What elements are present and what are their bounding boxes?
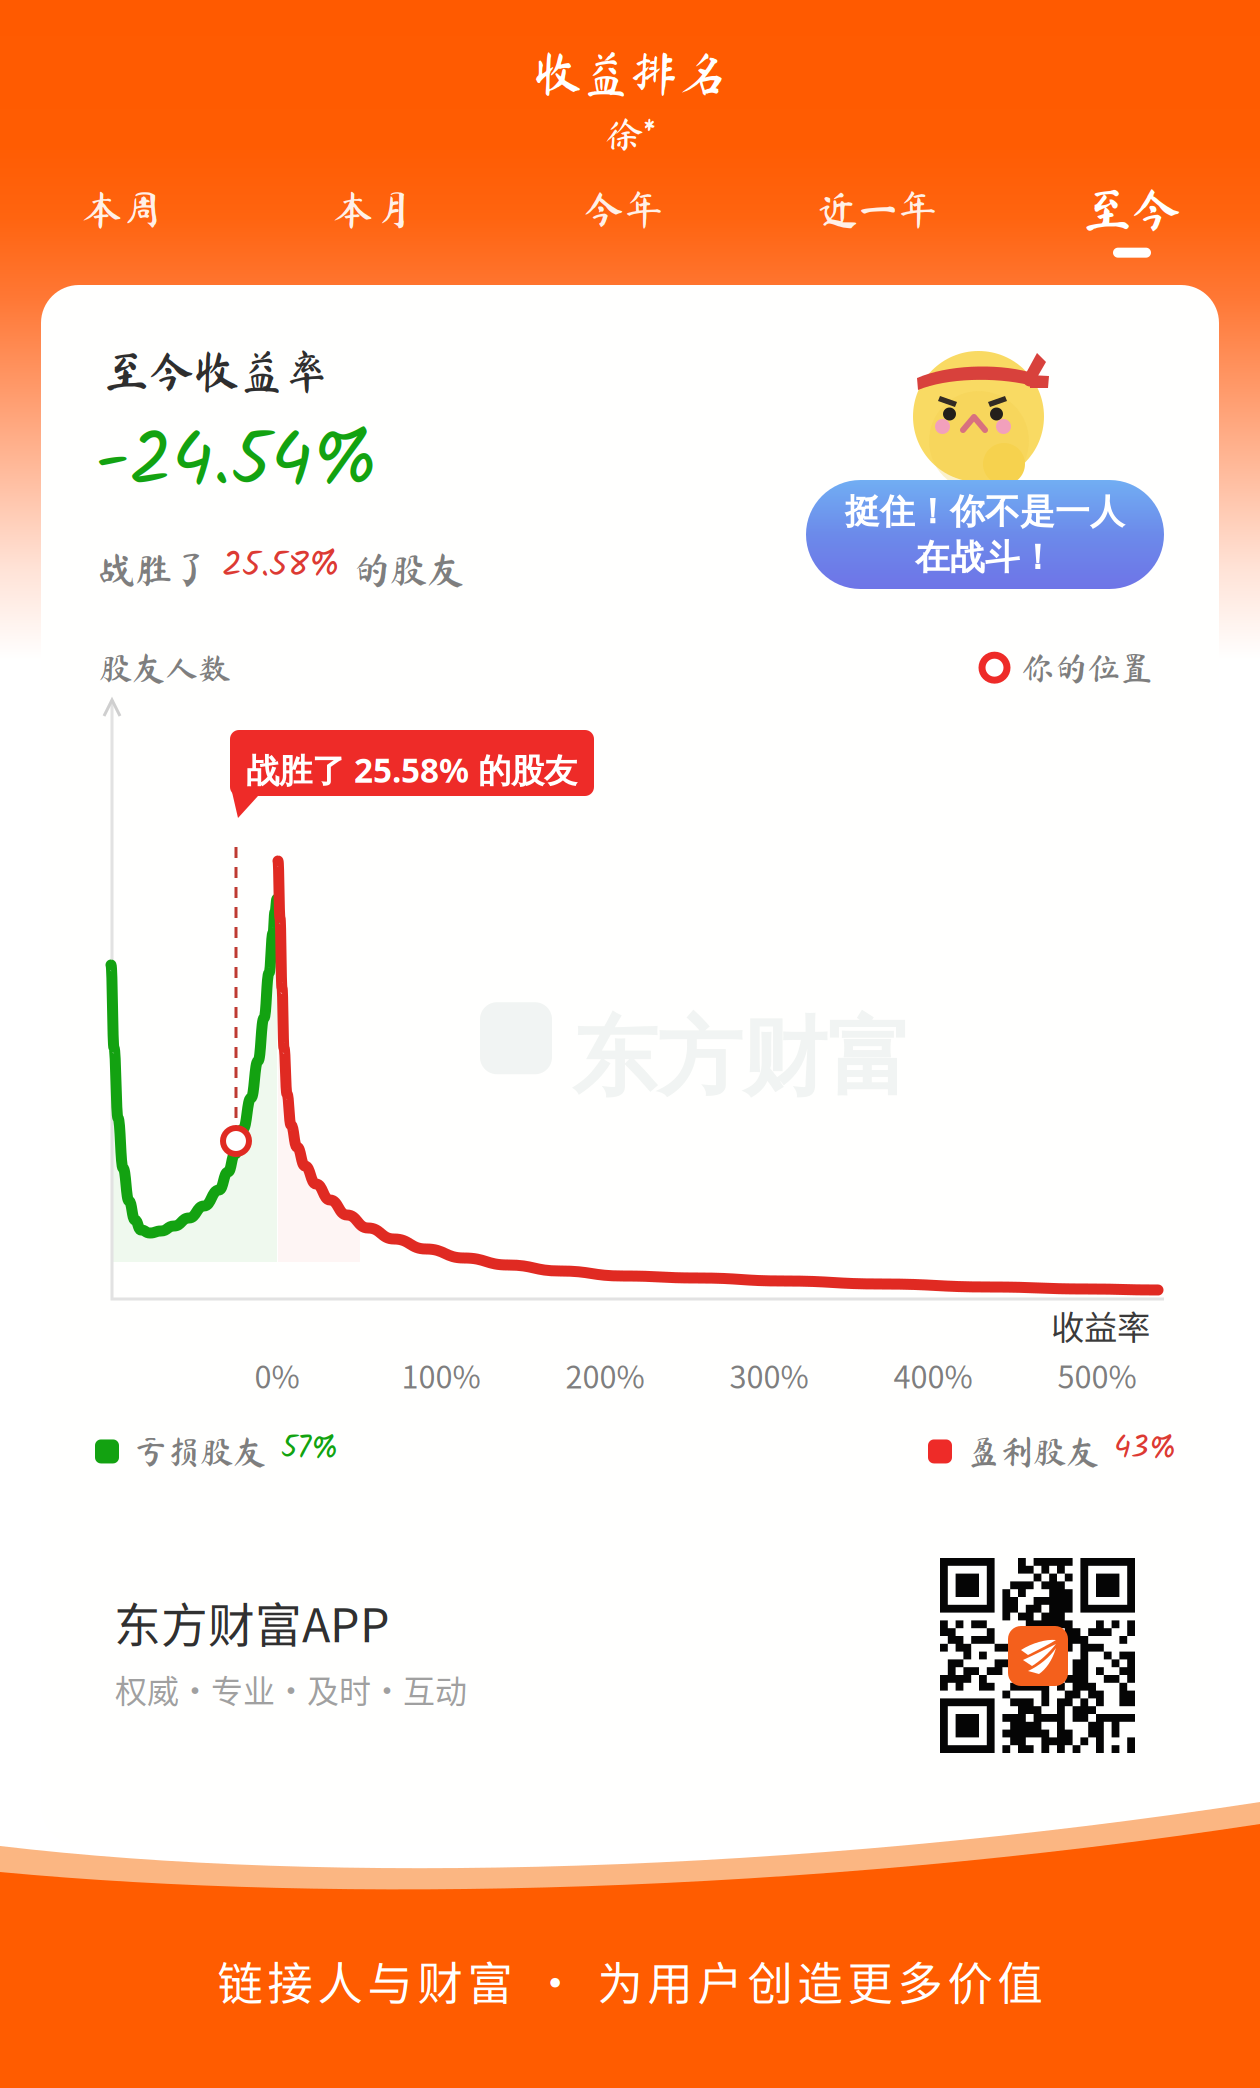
staticText: 权威·专业·及时·互动: [115, 1666, 467, 1712]
staticText: 东方财富: [572, 1004, 912, 1112]
staticText: 近一年: [818, 189, 938, 229]
staticText: 的股友: [353, 551, 464, 588]
staticText: 本周: [82, 189, 162, 229]
staticText: 今年: [584, 189, 664, 229]
button[interactable]: 今年: [504, 178, 744, 264]
staticText: 200%: [565, 1353, 644, 1397]
staticText: 收益排名: [534, 49, 726, 97]
staticText: 43%: [1114, 1425, 1176, 1474]
staticText: 链接人与财富 · 为用户创造更多价值: [217, 1948, 1042, 2014]
staticText: 25.58%: [222, 539, 340, 594]
button[interactable]: 近一年: [758, 178, 998, 264]
staticText: 你的位置: [1021, 651, 1153, 684]
staticText: 收益率: [1051, 1301, 1150, 1349]
staticText: 战胜了 25.58% 的股友: [246, 747, 577, 792]
staticText: 本月: [333, 189, 413, 229]
button[interactable]: 本月: [253, 178, 493, 264]
staticText: 300%: [729, 1353, 808, 1397]
staticText: 100%: [401, 1353, 480, 1397]
button[interactable]: 本周: [2, 178, 242, 264]
button[interactable]: 至今: [1012, 178, 1252, 264]
staticText: 挺住！你不是一人: [845, 490, 1125, 533]
staticText: 400%: [893, 1353, 972, 1397]
staticText: 徐*: [606, 115, 654, 152]
staticText: 57%: [281, 1425, 338, 1474]
staticText: 500%: [1057, 1353, 1136, 1397]
staticText: 股友人数: [99, 651, 231, 684]
staticText: 盈利股友: [967, 1435, 1099, 1468]
staticText: 东方财富APP: [114, 1588, 390, 1656]
staticText: -24.54%: [95, 404, 378, 523]
staticText: 在战斗！: [915, 535, 1055, 579]
staticText: 至今: [1083, 184, 1181, 234]
staticText: 0%: [254, 1353, 299, 1397]
staticText: 亏损股友: [134, 1435, 266, 1468]
staticText: 战胜了: [98, 551, 209, 588]
staticText: 至今收益率: [104, 348, 329, 393]
